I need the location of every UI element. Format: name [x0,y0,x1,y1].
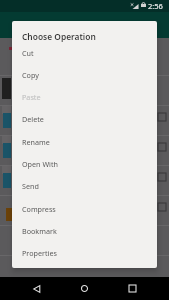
staticText: Properties [22,248,57,258]
button[interactable]: Compress [12,198,157,220]
button[interactable]: Recents [121,277,144,300]
staticText: 2:56 [148,1,163,11]
button[interactable]: Delete [12,108,157,130]
staticText: Compress [22,204,56,214]
button[interactable]: Paste [12,86,157,108]
button[interactable]: Bookmark [12,220,157,242]
button[interactable]: Copy [12,64,157,86]
button[interactable]: Home [73,277,96,300]
button[interactable]: Rename [12,131,157,153]
button[interactable]: Send [12,175,157,197]
button[interactable]: Cut [12,42,157,64]
staticText: Rename [22,137,50,147]
staticText: Paste [22,92,41,102]
staticText: Cut [22,48,34,58]
staticText: Choose Operation [22,31,96,42]
staticText: Copy [22,70,39,80]
staticText: Bookmark [22,226,57,236]
button[interactable]: Properties [12,242,157,264]
button[interactable]: Open With [12,153,157,175]
button[interactable]: Back [25,277,48,300]
staticText: Open With [22,159,58,169]
staticText: Send [22,181,39,191]
staticText: Delete [22,114,44,124]
